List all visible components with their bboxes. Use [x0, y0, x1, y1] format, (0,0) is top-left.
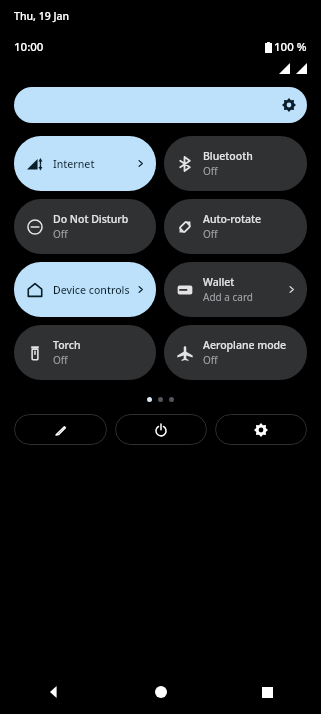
staticText: Thu, 19 Jan [14, 9, 70, 23]
button[interactable]: Aeroplane mode [164, 325, 307, 380]
button[interactable]: Wallet [164, 262, 307, 317]
button[interactable]: Settings [215, 414, 307, 445]
button[interactable]: Home [107, 670, 214, 714]
staticText: Bluetooth [203, 149, 253, 163]
button[interactable]: Auto-rotate [164, 199, 307, 254]
button[interactable]: Brightness [14, 87, 307, 123]
staticText: Auto-rotate [203, 212, 261, 226]
staticText: Torch [53, 338, 81, 352]
button[interactable]: Back [0, 670, 107, 714]
staticText: Do Not Disturb [53, 212, 129, 226]
staticText: Wallet [203, 275, 235, 289]
staticText: 100 % [274, 39, 307, 55]
staticText: Off [53, 353, 68, 367]
staticText: Off [203, 353, 218, 367]
button[interactable]: Torch [14, 325, 156, 380]
button[interactable]: Bluetooth [164, 136, 307, 191]
button[interactable]: Recent apps [214, 670, 321, 714]
staticText: Device controls [53, 283, 130, 297]
staticText: Off [203, 164, 218, 178]
staticText: Internet [53, 157, 95, 171]
button[interactable]: Edit [14, 414, 107, 445]
button[interactable]: Power [115, 414, 207, 445]
button[interactable]: Do Not Disturb [14, 199, 156, 254]
staticText: Off [53, 227, 68, 241]
staticText: Off [203, 227, 218, 241]
staticText: Aeroplane mode [203, 338, 287, 352]
staticText: Add a card [203, 290, 253, 304]
button[interactable]: Device controls [14, 262, 156, 317]
staticText: 10:00 [14, 39, 44, 55]
button[interactable]: Internet [14, 136, 156, 191]
